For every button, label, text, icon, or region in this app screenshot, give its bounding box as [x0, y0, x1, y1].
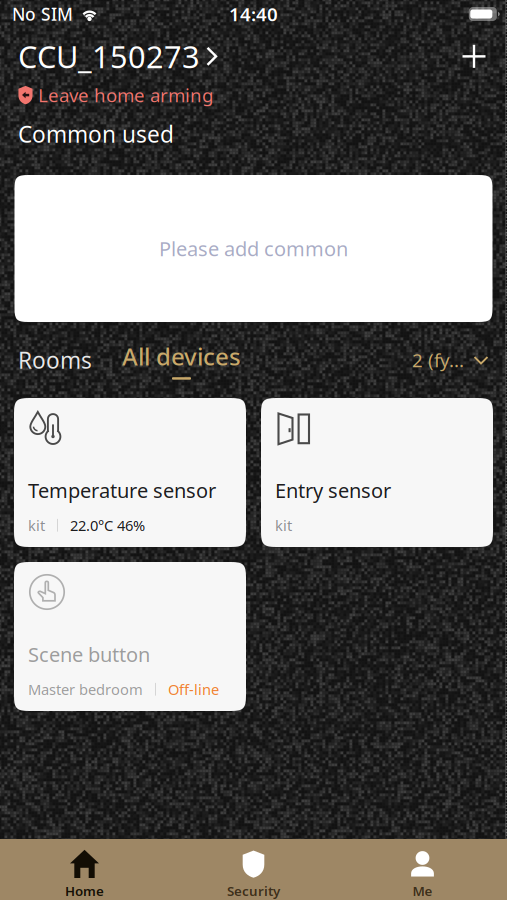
staticText: Temperature sensor [28, 477, 216, 504]
button[interactable]: Scene button [14, 562, 246, 711]
staticText: Rooms [18, 345, 92, 375]
staticText: Master bedroom [28, 679, 143, 699]
button[interactable]: 2 (fy... [412, 348, 489, 372]
button[interactable]: Temperature sensor [14, 398, 246, 547]
staticText: 22.0°C 46% [70, 515, 145, 535]
button[interactable]: Rooms [18, 345, 92, 375]
button[interactable]: Add device [461, 43, 487, 69]
button[interactable]: CCU_150273 [18, 36, 218, 77]
button[interactable]: Home [0, 839, 169, 900]
staticText: Scene button [28, 641, 150, 668]
staticText: Common used [18, 119, 174, 149]
staticText: CCU_150273 [18, 36, 200, 77]
button[interactable]: Me [338, 839, 507, 900]
staticText: Leave home arming [38, 83, 213, 107]
button[interactable]: All devices [122, 340, 241, 380]
button[interactable]: Security [169, 839, 338, 900]
staticText: Entry sensor [275, 477, 391, 504]
staticText: Home [65, 882, 104, 900]
staticText: All devices [122, 340, 241, 372]
button[interactable]: Please add common [14, 175, 492, 322]
staticText: Security [227, 882, 280, 900]
staticText: 2 (fy... [412, 348, 464, 372]
button[interactable]: Entry sensor [261, 398, 493, 547]
staticText: kit [275, 515, 292, 535]
staticText: Me [412, 882, 432, 900]
staticText: Please add common [159, 235, 348, 262]
staticText: Off-line [168, 679, 219, 699]
staticText: 14:40 [229, 2, 278, 26]
staticText: No SIM [12, 2, 73, 25]
staticText: kit [28, 515, 45, 535]
